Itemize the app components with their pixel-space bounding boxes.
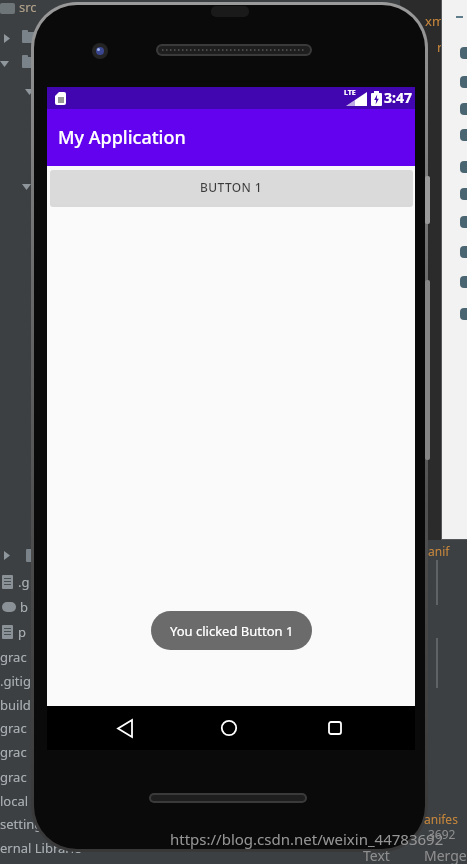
staticText: Merge — [424, 846, 467, 864]
staticText: setting — [0, 815, 43, 833]
staticText: grac — [0, 743, 27, 761]
staticText: .g — [18, 573, 30, 591]
staticText: xm — [425, 12, 445, 30]
staticText: Text — [363, 846, 390, 864]
staticText: grac — [0, 768, 27, 786]
button[interactable]: BUTTON 1 — [50, 170, 413, 204]
staticText: https://blog.csdn.net/weixin_44783692 — [170, 829, 444, 849]
staticText: local — [0, 792, 29, 810]
staticText: LTE — [344, 88, 356, 98]
staticText: ernal Librarie — [0, 839, 82, 857]
staticText: p — [18, 623, 26, 641]
staticText: 3692 — [428, 826, 456, 842]
button[interactable] — [221, 720, 237, 736]
staticText: 3:47 — [384, 88, 412, 107]
staticText: b — [20, 598, 28, 616]
staticText: BUTTON 1 — [200, 179, 263, 195]
staticText: .gitig — [0, 672, 31, 690]
staticText: anif — [428, 543, 450, 559]
staticText: anifes — [424, 811, 458, 827]
staticText: build — [0, 696, 31, 714]
button[interactable] — [328, 721, 342, 735]
staticText: src — [19, 0, 37, 16]
staticText: My Application — [58, 125, 186, 150]
button[interactable] — [117, 719, 133, 738]
staticText: grac — [0, 648, 27, 666]
staticText: You clicked Button 1 — [170, 622, 294, 640]
staticText: r — [437, 38, 443, 56]
staticText: grac — [0, 719, 27, 737]
